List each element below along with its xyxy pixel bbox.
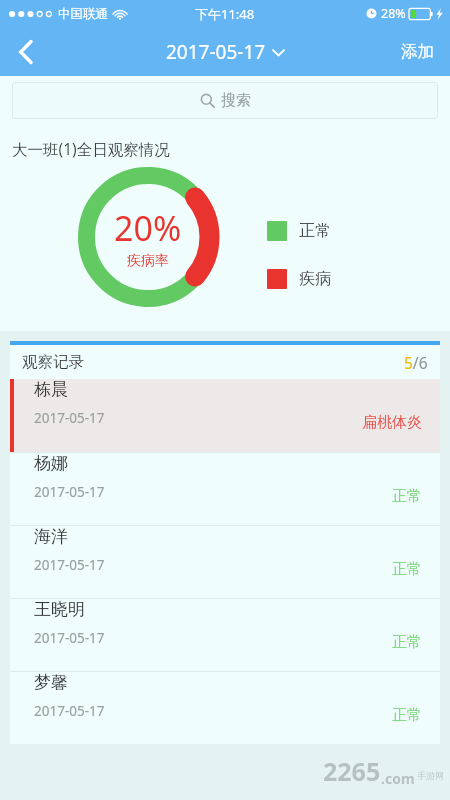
staticText: 28% bbox=[381, 5, 406, 22]
button[interactable]: 杨娜 bbox=[10, 453, 440, 525]
staticText: 2017-05-17 bbox=[34, 409, 105, 427]
staticText: 手游网 bbox=[417, 770, 444, 781]
staticText: 疾病 bbox=[299, 269, 331, 289]
staticText: 20% bbox=[114, 205, 182, 251]
button[interactable]: 王晓明 bbox=[10, 599, 440, 671]
staticText: 中国联通 bbox=[58, 6, 108, 22]
staticText: 正常 bbox=[392, 706, 422, 725]
button[interactable]: 梦馨 bbox=[10, 672, 440, 744]
staticText: 搜索 bbox=[221, 91, 251, 110]
staticText: 2017-05-17 bbox=[34, 483, 105, 501]
staticText: 正常 bbox=[392, 560, 422, 579]
staticText: 2017-05-17 bbox=[34, 556, 105, 574]
staticText: 观察记录 bbox=[22, 352, 84, 372]
staticText: 大一班(1)全日观察情况 bbox=[12, 138, 170, 159]
staticText: 海洋 bbox=[34, 526, 68, 547]
staticText: 添加 bbox=[401, 41, 434, 62]
staticText: 正常 bbox=[392, 487, 422, 506]
staticText: 2265 bbox=[323, 754, 381, 788]
button[interactable]: 栋晨 bbox=[10, 379, 440, 452]
staticText: 王晓明 bbox=[34, 599, 85, 620]
staticText: 扁桃体炎 bbox=[362, 413, 422, 432]
staticText: 5/6 bbox=[404, 352, 428, 373]
staticText: 下午11:48 bbox=[195, 5, 255, 23]
staticText: .com bbox=[381, 769, 415, 788]
button[interactable]: 2017-05-17 bbox=[166, 39, 284, 65]
button[interactable]: Back bbox=[0, 27, 52, 76]
staticText: 疾病率 bbox=[127, 252, 169, 270]
staticText: 2017-05-17 bbox=[166, 39, 266, 65]
button[interactable]: 添加 bbox=[385, 27, 450, 76]
staticText: 正常 bbox=[392, 633, 422, 652]
button[interactable]: 搜索 bbox=[12, 82, 438, 119]
button[interactable]: 海洋 bbox=[10, 526, 440, 598]
staticText: 正常 bbox=[299, 221, 331, 241]
staticText: 杨娜 bbox=[34, 453, 68, 474]
staticText: 2017-05-17 bbox=[34, 702, 105, 720]
staticText: 2017-05-17 bbox=[34, 629, 105, 647]
staticText: 栋晨 bbox=[34, 379, 68, 400]
staticText: 梦馨 bbox=[34, 672, 68, 693]
